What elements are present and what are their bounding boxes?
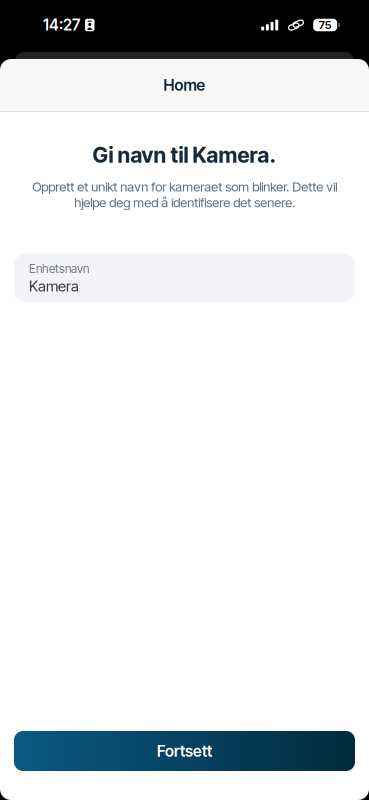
staticText: 75 xyxy=(319,18,332,32)
staticText: Home xyxy=(163,76,205,94)
staticText: Opprett et unikt navn for kameraet som b… xyxy=(32,179,337,210)
staticText: Kamera xyxy=(29,277,79,295)
staticText: 14:27 xyxy=(43,16,80,34)
staticText: Enhetsnavn xyxy=(29,261,89,276)
staticText: Gi navn til Kamera. xyxy=(92,142,276,168)
button[interactable]: Fortsett xyxy=(14,731,355,771)
button[interactable]: Enhetsnavn xyxy=(14,253,355,302)
staticText: Fortsett xyxy=(157,741,212,760)
